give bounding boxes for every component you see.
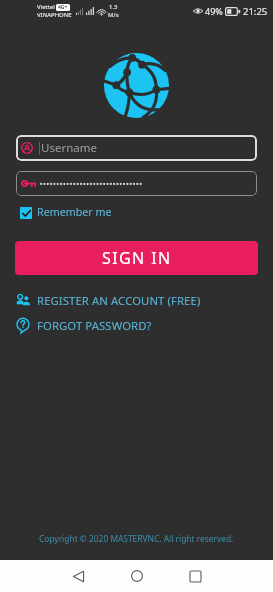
button[interactable]: [16, 171, 257, 196]
button[interactable]: Recents: [180, 561, 210, 591]
button[interactable]: Home: [122, 561, 152, 591]
button[interactable]: Remember me: [20, 205, 112, 220]
staticText: 21:25: [243, 5, 268, 18]
staticText: Copyright © 2020 MASTERVNC. All right re…: [39, 533, 234, 544]
staticText: REGISTER AN ACCOUNT (FREE): [37, 293, 201, 308]
staticText: 49%: [205, 5, 223, 17]
staticText: 4G+: [58, 4, 68, 11]
staticText: FORGOT PASSWORD?: [37, 318, 152, 333]
staticText: M/s: [108, 11, 119, 19]
button[interactable]: SIGN IN: [15, 241, 258, 275]
staticText: Remember me: [37, 205, 112, 220]
button[interactable]: REGISTER AN ACCOUNT (FREE): [16, 290, 273, 310]
staticText: Viettel: [37, 3, 55, 11]
staticText: VINAPHONE: [37, 11, 72, 19]
button[interactable]: Username: [16, 135, 257, 161]
button[interactable]: Back: [63, 561, 93, 591]
staticText: SIGN IN: [102, 247, 172, 269]
staticText: 1.3: [109, 3, 118, 11]
staticText: Username: [41, 140, 97, 156]
button[interactable]: FORGOT PASSWORD?: [16, 315, 273, 335]
